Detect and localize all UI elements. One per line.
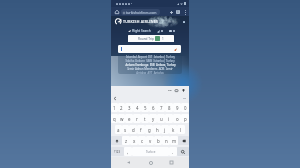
button[interactable]: h (153, 125, 161, 134)
staticText: m (172, 138, 177, 144)
button[interactable]: Sabiha Gokcen SAW Istanbul, Turkey (118, 59, 182, 63)
staticText: f (140, 127, 142, 133)
staticText: w (120, 116, 124, 122)
button[interactable]: Symbols (111, 147, 124, 156)
staticText: 8 (168, 105, 171, 111)
staticText: . (172, 149, 174, 155)
staticText: 1 (162, 37, 164, 41)
staticText: d (132, 127, 135, 133)
staticText: q (113, 116, 116, 122)
staticText: Istanbul Airport IST Istanbul, Turkey (126, 55, 175, 59)
button[interactable]: 8 (165, 103, 173, 112)
button[interactable] (118, 45, 181, 53)
staticText: k (172, 127, 175, 133)
staticText: Round Trip (138, 37, 154, 41)
staticText: j (164, 127, 166, 133)
button[interactable]: d (129, 125, 137, 134)
staticText: o (176, 116, 179, 122)
staticText: turkishairlines.com (126, 10, 157, 15)
button[interactable]: Antalya AYT Antalya (118, 71, 182, 74)
staticText: ?123 (114, 150, 121, 154)
button[interactable]: , (124, 147, 132, 156)
staticText: s (124, 127, 127, 133)
button[interactable]: More options (182, 9, 188, 15)
staticText: 1 (113, 105, 116, 111)
button[interactable]: Backspace (178, 136, 189, 145)
button[interactable]: u (157, 114, 165, 123)
button[interactable]: Recent apps (167, 158, 176, 167)
button[interactable]: Menu (181, 19, 186, 24)
staticText: , (127, 149, 129, 155)
button[interactable]: y (149, 114, 157, 123)
button[interactable]: GIF (167, 88, 172, 93)
button[interactable]: 9 (173, 103, 181, 112)
button[interactable]: Clipboard (174, 88, 179, 93)
button[interactable]: r (133, 114, 141, 123)
button[interactable]: b (154, 136, 162, 145)
button[interactable]: Search (177, 147, 189, 156)
button[interactable]: Back (124, 158, 133, 167)
button[interactable]: v (146, 136, 154, 145)
staticText: l (180, 127, 182, 133)
button[interactable]: 0 (181, 103, 189, 112)
button[interactable]: Tabs (175, 9, 181, 15)
staticText: Turkce (146, 150, 156, 154)
button[interactable]: z (122, 136, 130, 145)
button[interactable]: l (177, 125, 185, 134)
staticText: 4 (136, 105, 139, 111)
staticText: v (149, 138, 152, 144)
button[interactable]: Shift (111, 136, 122, 145)
staticText: n (165, 138, 168, 144)
button[interactable]: Izmir Adnan Menderes ADB Izmir (118, 67, 182, 71)
button[interactable]: 3 (125, 103, 133, 112)
staticText: 9 (176, 105, 179, 111)
button[interactable]: i (165, 114, 173, 123)
staticText: 2 (120, 105, 123, 111)
button[interactable]: 4 (133, 103, 141, 112)
button[interactable]: m (170, 136, 178, 145)
staticText: 3 (177, 10, 179, 14)
button[interactable]: w (118, 114, 125, 123)
button[interactable]: k (169, 125, 177, 134)
button[interactable]: turkishairlines.com (121, 9, 160, 15)
staticText: c (141, 138, 144, 144)
button[interactable]: Round Trip (128, 35, 174, 42)
button[interactable]: New tab (168, 9, 174, 15)
button[interactable]: g (145, 125, 153, 134)
button[interactable]: 2 (118, 103, 125, 112)
button[interactable]: s (122, 125, 129, 134)
button[interactable]: Location (181, 88, 186, 93)
staticText: TURKISH AIRLINES (123, 19, 159, 24)
staticText: 3 (128, 105, 131, 111)
button[interactable]: Ankara Esenboga ESB Ankara, Turkey (118, 63, 182, 67)
staticText: i (168, 116, 170, 122)
button[interactable]: a (115, 125, 122, 134)
button[interactable]: t (141, 114, 149, 123)
staticText: e (128, 116, 131, 122)
button[interactable]: e (125, 114, 133, 123)
button[interactable]: p (181, 114, 189, 123)
button[interactable]: x (130, 136, 138, 145)
button[interactable]: Turkce (132, 147, 169, 156)
staticText: Ankara Esenboga ESB Ankara, Turkey (125, 63, 176, 67)
button[interactable]: q (111, 114, 118, 123)
staticText: g (148, 127, 151, 133)
staticText: 7 (160, 105, 163, 111)
button[interactable]: n (162, 136, 170, 145)
button[interactable]: 6 (149, 103, 157, 112)
button[interactable]: 7 (157, 103, 165, 112)
button[interactable]: 5 (141, 103, 149, 112)
button[interactable]: 1 (111, 103, 118, 112)
button[interactable]: . (169, 147, 177, 156)
staticText: p (184, 116, 187, 122)
button[interactable]: j (161, 125, 169, 134)
staticText: 0 (184, 105, 187, 111)
button[interactable]: f (137, 125, 145, 134)
button[interactable]: Istanbul Airport IST Istanbul, Turkey (118, 55, 182, 59)
button[interactable]: c (138, 136, 146, 145)
staticText: u (160, 116, 163, 122)
button[interactable]: o (173, 114, 181, 123)
button[interactable]: Home (114, 9, 120, 15)
button[interactable]: Home (146, 158, 155, 167)
staticText: Antalya AYT Antalya (136, 71, 164, 74)
